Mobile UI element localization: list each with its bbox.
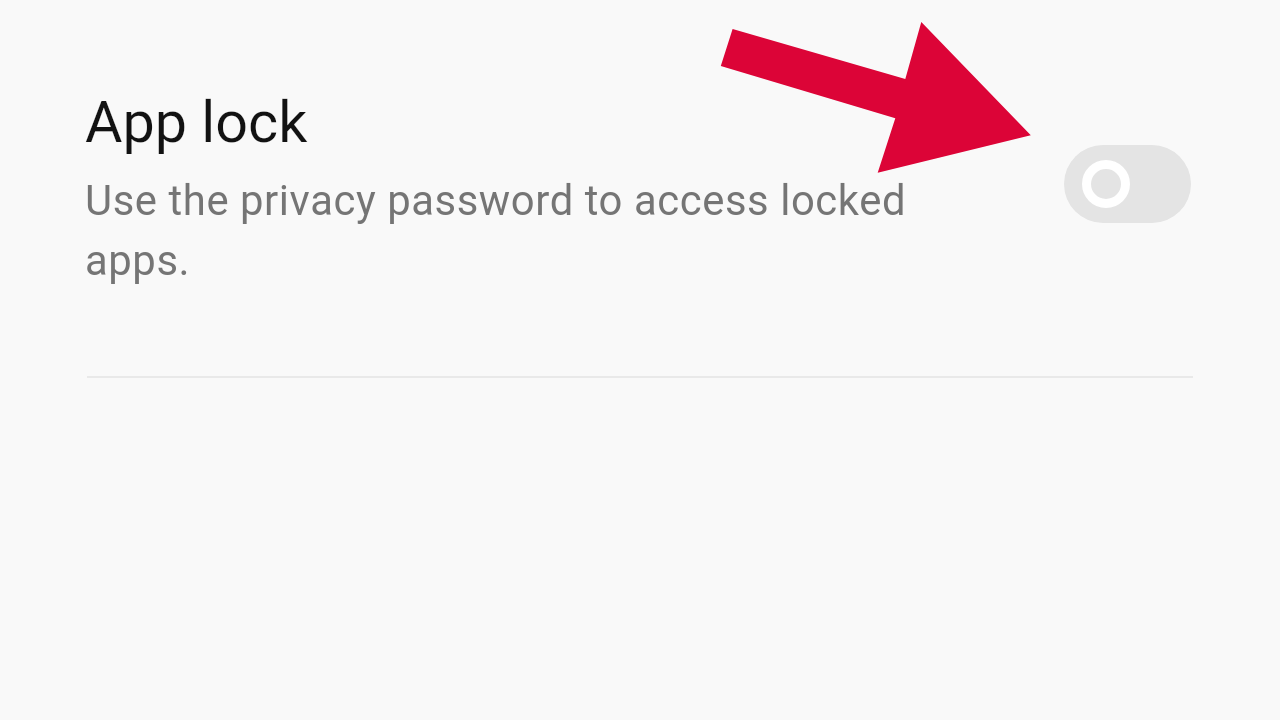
button[interactable]: App lock xyxy=(0,0,1280,377)
staticText: Use the privacy password to access locke… xyxy=(85,176,1005,285)
staticText: App lock xyxy=(85,89,308,156)
button[interactable]: App lock switch, off xyxy=(1064,145,1191,223)
